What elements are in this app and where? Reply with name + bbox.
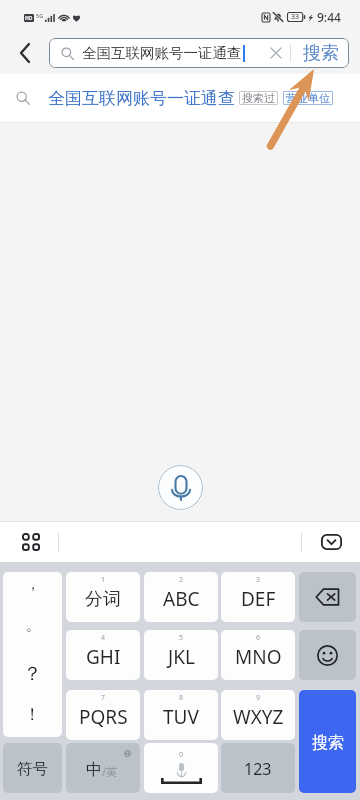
staticText: 4	[101, 633, 106, 643]
button[interactable]: 5	[144, 630, 218, 680]
staticText: ？	[23, 662, 42, 686]
button[interactable]: 8	[144, 690, 218, 740]
button[interactable]: Back	[11, 39, 39, 67]
staticText: 搜索	[303, 42, 339, 65]
staticText: PQRS	[79, 704, 128, 730]
staticText: 123	[244, 758, 272, 780]
staticText: 英	[106, 765, 117, 779]
staticText: 全国互联网账号一证通查	[82, 44, 242, 62]
staticText: 分词	[85, 588, 121, 611]
button[interactable]: 符号	[3, 743, 62, 793]
staticText: ABC	[163, 586, 200, 612]
staticText: 2	[179, 575, 184, 585]
staticText: ！	[24, 704, 41, 725]
staticText: 9	[256, 693, 261, 703]
staticText: MNO	[235, 644, 282, 670]
staticText: 0	[179, 750, 184, 760]
staticText: 搜索过	[242, 91, 275, 105]
button[interactable]: Keyboard panels	[16, 527, 46, 557]
button[interactable]: 1	[66, 572, 140, 622]
button[interactable]: Emoji	[299, 630, 356, 680]
staticText: DEF	[241, 586, 276, 612]
staticText: 6	[256, 633, 261, 643]
button[interactable]: Punctuation	[3, 572, 62, 737]
staticText: TUV	[163, 704, 199, 730]
staticText: 全国互联网账号一证通查	[48, 88, 235, 109]
button[interactable]: 9	[221, 690, 295, 740]
staticText: 8	[179, 693, 184, 703]
button[interactable]: 123	[221, 743, 295, 793]
button[interactable]: 搜索	[303, 38, 339, 68]
staticText: 中	[86, 760, 102, 780]
button[interactable]: 7	[66, 690, 140, 740]
button[interactable]: Backspace	[299, 572, 356, 622]
staticText: 5G	[36, 12, 44, 19]
button[interactable]: Space	[144, 743, 218, 793]
staticText: 搜索	[312, 733, 344, 753]
staticText: 3	[256, 575, 261, 585]
staticText: 33	[291, 12, 300, 22]
staticText: 。	[26, 617, 40, 635]
staticText: 营业单位	[286, 91, 330, 105]
staticText: ，	[26, 576, 40, 594]
button[interactable]: 搜索	[299, 690, 356, 793]
staticText: GHI	[86, 644, 121, 670]
staticText: /	[102, 764, 107, 779]
staticText: 7	[101, 693, 106, 703]
button[interactable]: 2	[144, 572, 218, 622]
button[interactable]: Voice input	[158, 465, 203, 510]
button[interactable]: Hide keyboard	[316, 527, 346, 557]
staticText: JKL	[168, 644, 195, 670]
button[interactable]: 4	[66, 630, 140, 680]
staticText: 9:44	[317, 9, 341, 25]
button[interactable]: 全国互联网账号一证通查	[0, 74, 360, 122]
staticText: WXYZ	[233, 704, 284, 730]
staticText: 符号	[17, 759, 48, 779]
button[interactable]: 中	[66, 743, 140, 793]
staticText: 1	[101, 575, 106, 585]
button[interactable]: 3	[221, 572, 295, 622]
staticText: 5	[179, 633, 184, 643]
button[interactable]: Clear text	[262, 39, 290, 67]
staticText: HD	[25, 15, 33, 22]
button[interactable]: 6	[221, 630, 295, 680]
